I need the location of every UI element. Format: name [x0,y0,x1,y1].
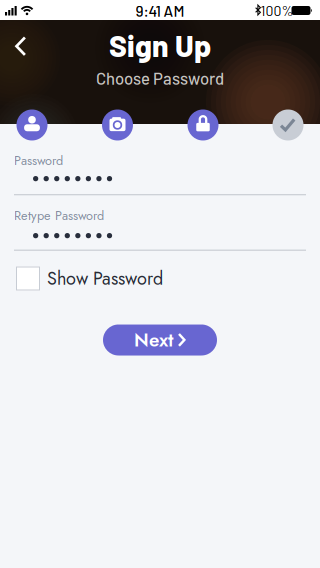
button[interactable]: Show Password [16,265,163,291]
staticText: 100% [260,2,293,19]
staticText: Retype Password [14,206,104,225]
staticText: Next [134,326,173,353]
staticText: Show Password [47,265,163,291]
staticText: Password [14,151,63,170]
staticText: Sign Up [109,27,211,63]
button[interactable]: Back [10,31,32,61]
staticText: 9:41 AM [135,1,184,20]
button[interactable]: Next [103,324,217,355]
staticText: Choose Password [96,68,224,88]
